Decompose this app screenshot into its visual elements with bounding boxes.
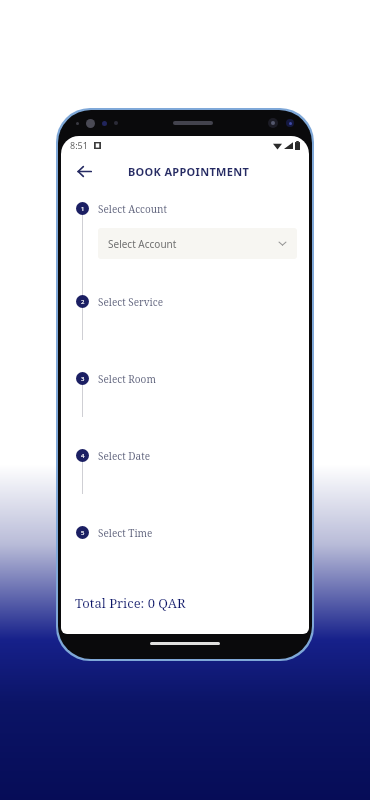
staticText: Select Time: [98, 526, 153, 540]
button[interactable]: Select Date: [98, 449, 297, 463]
staticText: 8:51: [70, 139, 88, 151]
staticText: 2: [81, 298, 85, 306]
staticText: Select Date: [98, 449, 151, 463]
staticText: 5: [81, 529, 85, 537]
button[interactable]: Select Time: [98, 526, 297, 540]
button[interactable]: Select Service: [98, 295, 297, 309]
staticText: Total Price: 0 QAR: [75, 594, 186, 612]
button[interactable]: Select Room: [98, 372, 297, 386]
staticText: Select Service: [98, 295, 164, 309]
staticText: Select Account: [108, 237, 177, 251]
staticText: 4: [81, 452, 85, 460]
staticText: 3: [81, 375, 85, 383]
button[interactable]: Back: [69, 156, 99, 186]
button[interactable]: Select Account: [98, 202, 297, 216]
staticText: Select Account: [98, 202, 168, 216]
staticText: 1: [81, 205, 85, 213]
staticText: Select Room: [98, 372, 156, 386]
staticText: BOOK APPOINTMENT: [128, 164, 250, 179]
button[interactable]: Select Account: [98, 228, 297, 259]
